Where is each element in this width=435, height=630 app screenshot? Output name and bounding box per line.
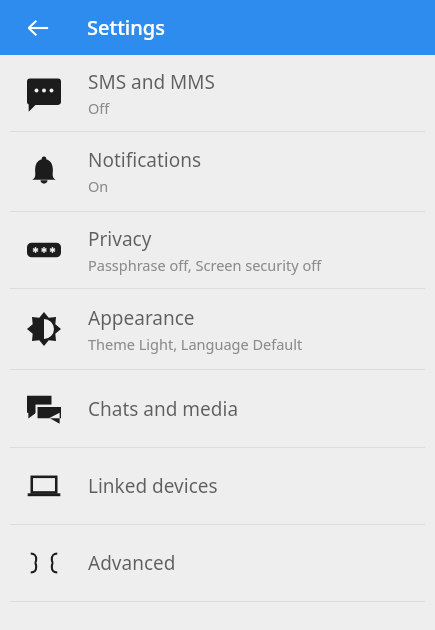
button[interactable]: Privacy bbox=[0, 212, 435, 288]
staticText: Settings bbox=[87, 14, 165, 41]
staticText: Appearance bbox=[88, 305, 195, 331]
staticText: Passphrase off, Screen security off bbox=[88, 255, 322, 275]
staticText: Notifications bbox=[88, 147, 202, 173]
button[interactable]: Notifications bbox=[0, 132, 435, 211]
button[interactable]: Appearance bbox=[0, 289, 435, 369]
button[interactable]: Advanced bbox=[0, 525, 435, 601]
staticText: SMS and MMS bbox=[88, 69, 215, 95]
staticText: Linked devices bbox=[88, 473, 218, 499]
button[interactable]: Chats and media bbox=[0, 370, 435, 447]
button[interactable]: Back bbox=[14, 4, 62, 52]
staticText: Privacy bbox=[88, 226, 152, 252]
button[interactable]: SMS and MMS bbox=[0, 55, 435, 131]
staticText: Theme Light, Language Default bbox=[88, 334, 303, 354]
staticText: Chats and media bbox=[88, 396, 239, 422]
staticText: Off bbox=[88, 98, 110, 118]
staticText: Advanced bbox=[88, 550, 176, 576]
button[interactable]: Linked devices bbox=[0, 448, 435, 524]
staticText: On bbox=[88, 176, 109, 196]
